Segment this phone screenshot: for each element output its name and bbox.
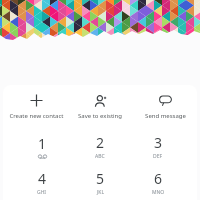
- staticText: JKL: [97, 189, 105, 196]
- button[interactable]: 4: [13, 165, 71, 200]
- staticText: GHI: [37, 189, 47, 196]
- staticText: Create new contact: [9, 112, 64, 120]
- button[interactable]: Send message: [133, 90, 197, 124]
- button[interactable]: Save to existing: [68, 90, 132, 124]
- staticText: DEF: [153, 153, 163, 160]
- button[interactable]: Create new contact: [4, 90, 68, 124]
- button[interactable]: 3: [129, 128, 187, 165]
- button[interactable]: 5: [71, 165, 129, 200]
- staticText: 4: [38, 169, 47, 188]
- staticText: 5: [96, 169, 105, 188]
- button[interactable]: 1: [13, 128, 71, 165]
- staticText: MNO: [152, 189, 165, 196]
- staticText: Send message: [145, 112, 186, 120]
- button[interactable]: 2: [71, 128, 129, 165]
- staticText: 3: [154, 133, 163, 152]
- staticText: 2: [96, 133, 105, 152]
- staticText: Save to existing: [78, 112, 122, 120]
- staticText: ABC: [95, 153, 105, 160]
- button[interactable]: 6: [129, 165, 187, 200]
- staticText: 6: [154, 169, 163, 188]
- staticText: 1: [38, 134, 47, 153]
